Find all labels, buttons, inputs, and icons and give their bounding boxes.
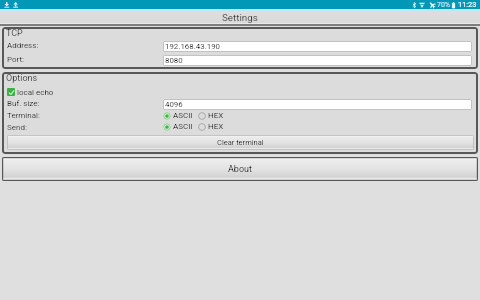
staticText: 4096 <box>165 100 183 109</box>
staticText: Address: <box>7 41 39 50</box>
staticText: 192.168.43.190 <box>165 42 221 51</box>
staticText: ASCII <box>173 122 193 131</box>
button[interactable]: About <box>2 157 478 181</box>
staticText: Clear terminal <box>217 138 264 147</box>
staticText: Options <box>6 73 38 84</box>
staticText: Terminal: <box>7 111 40 120</box>
staticText: 11:23 <box>458 0 477 9</box>
staticText: 8080 <box>165 56 183 65</box>
button[interactable]: ASCII <box>163 111 193 120</box>
button[interactable]: Settings <box>0 11 480 24</box>
staticText: About <box>228 164 252 175</box>
staticText: 70% <box>437 1 450 9</box>
button[interactable]: local echo <box>7 87 54 97</box>
staticText: HEX <box>208 111 224 120</box>
button[interactable]: 192.168.43.190 <box>163 41 472 52</box>
staticText: ASCII <box>173 111 193 120</box>
staticText: Port: <box>7 55 25 64</box>
staticText: HEX <box>208 122 224 131</box>
button[interactable]: ASCII <box>163 122 193 131</box>
button[interactable]: Clear terminal <box>7 135 474 150</box>
staticText: Send: <box>7 123 27 132</box>
staticText: TCP <box>6 28 23 39</box>
button[interactable]: HEX <box>198 122 224 131</box>
button[interactable]: 8080 <box>163 55 472 66</box>
button[interactable]: 4096 <box>163 99 472 110</box>
staticText: Settings <box>222 12 258 23</box>
button[interactable]: HEX <box>198 111 224 120</box>
staticText: Buf. size: <box>7 99 40 108</box>
staticText: local echo <box>17 88 54 97</box>
